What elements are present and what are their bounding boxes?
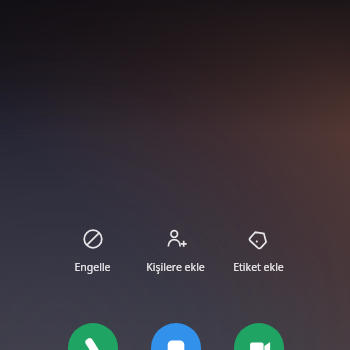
staticText: Kişilere ekle <box>146 260 205 274</box>
button[interactable]: Mesaj gönder <box>151 323 201 350</box>
button[interactable]: Görüntülü ara <box>234 323 284 350</box>
staticText: Engelle <box>74 260 111 274</box>
button[interactable]: Ara <box>68 323 118 350</box>
button[interactable]: Engelle <box>51 228 134 274</box>
staticText: Etiket ekle <box>233 260 284 274</box>
button[interactable]: Kişilere ekle <box>134 228 217 274</box>
button[interactable]: Etiket ekle <box>217 228 300 274</box>
